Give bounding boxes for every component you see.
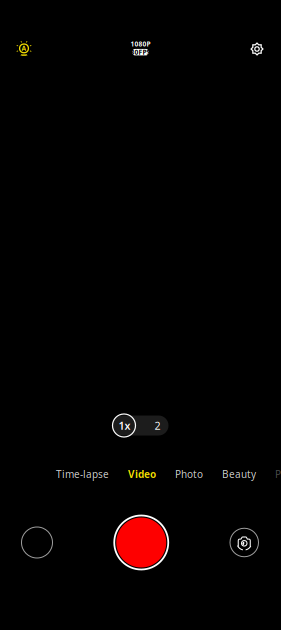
- staticText: Beauty: [222, 467, 256, 481]
- button[interactable]: Gallery: [21, 527, 52, 558]
- button[interactable]: Beauty: [222, 467, 256, 481]
- staticText: Photo: [175, 467, 203, 481]
- staticText: 1080P: [130, 40, 150, 48]
- staticText: 1x: [118, 418, 130, 433]
- button[interactable]: Time-lapse: [56, 467, 109, 481]
- staticText: Video: [128, 467, 156, 481]
- staticText: 30FPS: [130, 48, 150, 57]
- staticText: A: [21, 44, 26, 53]
- button[interactable]: 1080P: [112, 30, 168, 68]
- button[interactable]: Settings: [235, 30, 279, 68]
- button[interactable]: Video: [128, 467, 156, 481]
- button[interactable]: Record: [114, 515, 168, 569]
- button[interactable]: 2: [136, 415, 168, 435]
- button[interactable]: Photo: [175, 467, 203, 481]
- staticText: Time-lapse: [56, 467, 109, 481]
- button[interactable]: Flash auto: [2, 30, 46, 68]
- staticText: Po: [275, 467, 281, 481]
- button[interactable]: 1x: [112, 415, 136, 435]
- button[interactable]: Switch camera: [230, 528, 258, 557]
- button[interactable]: Po: [275, 467, 281, 481]
- staticText: 2: [154, 418, 160, 433]
